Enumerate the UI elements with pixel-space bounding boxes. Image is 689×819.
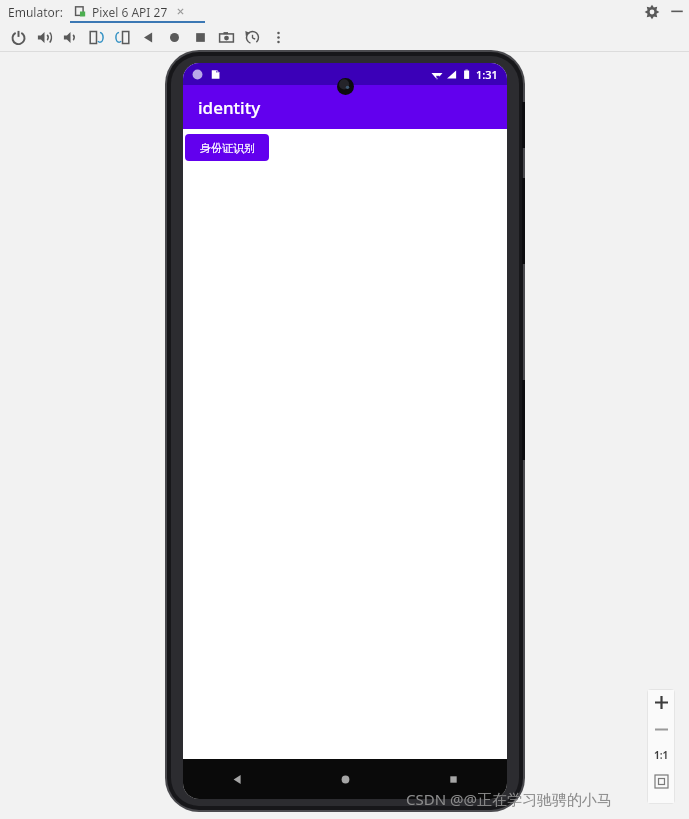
button[interactable]: Zoom in xyxy=(647,689,675,716)
staticText: Pixel 6 API 27 xyxy=(92,4,168,20)
button[interactable]: Rotate right xyxy=(109,24,135,50)
staticText: 1:31 xyxy=(476,67,498,82)
staticText: Emulator: xyxy=(8,4,63,20)
button[interactable]: Settings xyxy=(642,2,662,22)
button[interactable]: Zoom to actual size xyxy=(647,742,675,768)
button[interactable]: Volume down xyxy=(57,24,83,50)
button[interactable]: Overview xyxy=(187,24,213,50)
staticText: identity xyxy=(198,96,261,119)
button[interactable]: Rotate left xyxy=(83,24,109,50)
button[interactable]: Minimize xyxy=(668,2,686,20)
button[interactable]: Power xyxy=(5,24,31,50)
button[interactable]: 身份证识别 xyxy=(185,134,269,161)
staticText: 身份证识别 xyxy=(200,141,255,155)
button[interactable]: Back xyxy=(135,24,161,50)
button[interactable]: History xyxy=(239,24,265,50)
button[interactable]: Back xyxy=(183,759,291,799)
button[interactable]: More xyxy=(265,24,291,50)
staticText: CSDN @@正在学习驰骋的小马 xyxy=(406,789,612,809)
button[interactable]: Home xyxy=(291,759,399,799)
button[interactable]: Close tab xyxy=(175,6,186,17)
button[interactable]: Pixel 6 API 27 xyxy=(74,0,186,23)
button[interactable]: Zoom out xyxy=(647,716,675,742)
button[interactable]: Zoom to fit xyxy=(647,768,675,794)
button[interactable]: Home xyxy=(161,24,187,50)
button[interactable]: Overview xyxy=(399,759,507,799)
button[interactable]: Screenshot xyxy=(213,24,239,50)
button[interactable]: Volume up xyxy=(31,24,57,50)
staticText: 1:1 xyxy=(654,748,669,762)
